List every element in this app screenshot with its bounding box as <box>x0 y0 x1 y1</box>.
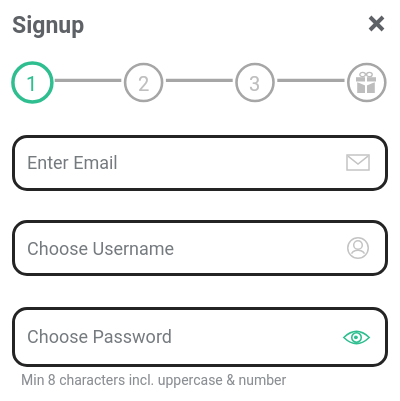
button[interactable]: Rewards <box>347 63 387 103</box>
button[interactable]: Enter Email <box>12 135 388 191</box>
staticText: Enter Email <box>27 152 118 173</box>
button[interactable]: 3 <box>235 63 275 103</box>
staticText: 1 <box>26 72 38 95</box>
staticText: Choose Username <box>27 238 175 259</box>
staticText: Min 8 characters incl. uppercase & numbe… <box>21 372 287 388</box>
button[interactable]: Signup <box>12 12 85 39</box>
staticText: 2 <box>138 72 150 95</box>
staticText: Signup <box>12 12 85 39</box>
button[interactable]: 2 <box>124 63 164 103</box>
button[interactable]: Choose Username <box>12 220 388 276</box>
staticText: Choose Password <box>27 326 172 347</box>
button[interactable]: 1 <box>12 63 52 103</box>
staticText: 3 <box>249 72 261 95</box>
button[interactable]: Close <box>358 5 395 42</box>
button[interactable]: Choose Password <box>12 307 388 367</box>
